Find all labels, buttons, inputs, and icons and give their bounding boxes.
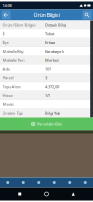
staticText: Bilgi Yok <box>45 110 60 116</box>
staticText: Mevki <box>2 102 13 107</box>
staticText: Ada <box>2 66 9 72</box>
button[interactable]: Back <box>66 187 80 200</box>
staticText: Detaylı Bilgi <box>45 22 66 27</box>
staticText: İlçe <box>2 40 8 45</box>
button[interactable]: Map tool <box>46 177 62 187</box>
staticText: Ürün / Ekim Bilgisi <box>2 22 35 27</box>
staticText: Ürün Bilgisi <box>33 11 59 18</box>
staticText: Tokat <box>45 31 54 36</box>
staticText: Parselden Ekle <box>37 121 62 127</box>
staticText: 1/1 <box>45 93 50 98</box>
staticText: Erbaa <box>45 40 55 45</box>
button[interactable]: Recent apps <box>13 187 27 200</box>
staticText: 4.372,00 <box>45 84 59 89</box>
button[interactable]: Back <box>1 10 10 19</box>
button[interactable]: Parselden Ekle <box>0 117 93 130</box>
staticText: Hisse <box>2 93 12 98</box>
staticText: Mahalle/Köy <box>2 49 23 54</box>
button[interactable]: Map tool <box>77 177 93 187</box>
button[interactable]: Map tool <box>62 177 77 187</box>
button[interactable]: Search <box>82 10 91 19</box>
staticText: İl <box>2 31 4 36</box>
button[interactable]: Map tool <box>15 177 31 187</box>
staticText: 101 <box>45 66 51 72</box>
staticText: Karabayırlı <box>45 49 64 54</box>
staticText: 3 <box>45 75 47 80</box>
staticText: Tapu Alanı <box>2 84 20 89</box>
staticText: Merkez <box>45 57 59 63</box>
button[interactable]: Home <box>39 187 53 200</box>
staticText: Mahalle Yeri <box>2 57 24 63</box>
staticText: Üretim Tipi <box>2 110 22 116</box>
staticText: 14:08 <box>2 3 11 8</box>
button[interactable]: Map tool <box>31 177 46 187</box>
staticText: Parsel <box>2 75 13 80</box>
button[interactable]: Map tool <box>0 177 15 187</box>
